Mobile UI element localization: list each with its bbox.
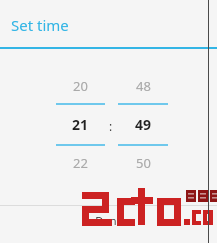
button[interactable]: Set time (0, 0, 217, 47)
button[interactable]: Done (0, 206, 217, 243)
staticText: Set time (11, 15, 69, 35)
button[interactable]: 20 (56, 68, 105, 180)
button[interactable]: 48 (118, 68, 168, 180)
staticText: 20 (73, 77, 88, 95)
staticText: 49 (135, 115, 152, 134)
staticText: : (109, 118, 113, 134)
staticText: 50 (136, 154, 151, 172)
staticText: 21 (72, 115, 89, 134)
staticText: Done (95, 213, 123, 228)
staticText: 48 (136, 77, 151, 95)
staticText: 22 (73, 154, 88, 172)
